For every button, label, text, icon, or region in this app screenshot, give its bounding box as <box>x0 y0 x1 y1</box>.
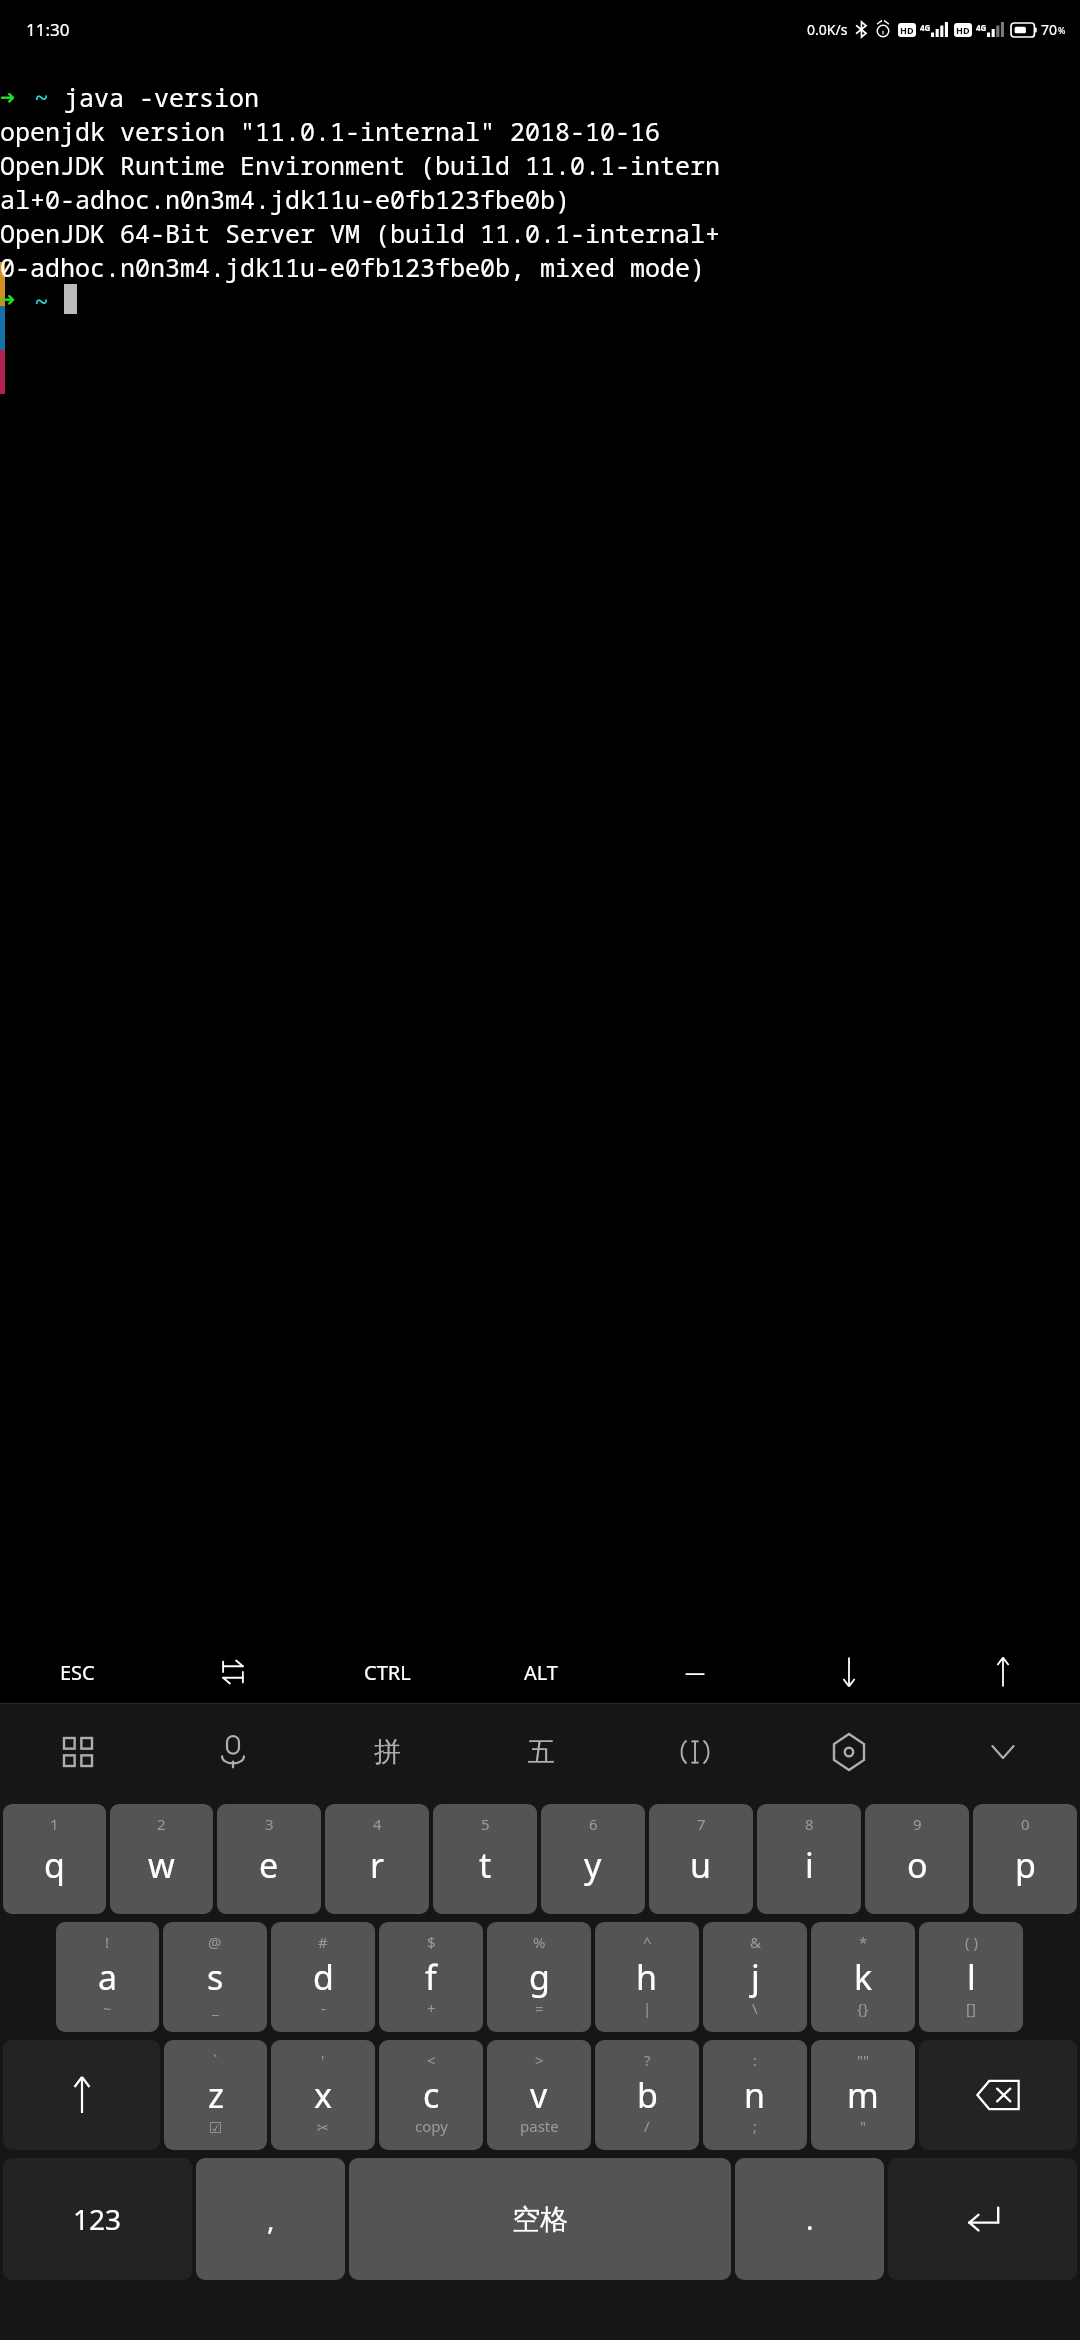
staticText: e <box>259 1842 279 1888</box>
staticText: w <box>148 1842 175 1888</box>
button[interactable]: 9 <box>865 1804 969 1914</box>
button[interactable]: Voice input <box>155 1704 310 1800</box>
button[interactable]: Apps <box>0 1704 155 1800</box>
staticText: 9 <box>913 1814 922 1834</box>
button[interactable]: 8 <box>757 1804 861 1914</box>
staticText: j <box>751 1954 760 2000</box>
staticText: ' <box>321 2050 325 2070</box>
button[interactable]: Shift <box>3 2040 160 2150</box>
button[interactable]: . <box>735 2158 884 2280</box>
staticText: ESC <box>60 1659 95 1686</box>
button[interactable]: @ <box>163 1922 267 2032</box>
button[interactable]: — <box>618 1641 772 1703</box>
staticText: > <box>535 2050 544 2070</box>
staticText: 8 <box>805 1814 814 1834</box>
staticText: ✂ <box>317 2119 330 2136</box>
staticText: o <box>907 1842 928 1888</box>
staticText: : <box>753 2050 758 2070</box>
button[interactable]: 7 <box>649 1804 753 1914</box>
staticText: CTRL <box>364 1659 411 1686</box>
button[interactable]: : <box>703 2040 807 2150</box>
button[interactable]: ' <box>271 2040 375 2150</box>
staticText: ☑ <box>209 2119 223 2136</box>
staticText: ( ) <box>965 1932 978 1952</box>
button[interactable]: > <box>487 2040 591 2150</box>
staticText: & <box>750 1932 761 1952</box>
staticText: 3 <box>265 1814 274 1834</box>
staticText: v <box>530 2072 548 2118</box>
staticText: g <box>529 1954 550 2000</box>
button[interactable]: 2 <box>110 1804 213 1914</box>
staticText: 0.0K/s <box>807 20 848 39</box>
button[interactable]: ESC <box>0 1641 155 1703</box>
button[interactable]: Settings <box>772 1704 926 1800</box>
staticText: ^ <box>643 1932 652 1952</box>
staticText: ALT <box>524 1659 558 1686</box>
button[interactable]: Cursor <box>618 1704 772 1800</box>
button[interactable]: 空格 <box>349 2158 731 2280</box>
staticText: OpenJDK 64-Bit Server VM (build 11.0.1-i… <box>0 216 721 250</box>
staticText: - <box>321 1998 326 2018</box>
staticText: y <box>584 1842 602 1888</box>
staticText: ~ <box>103 1998 112 2018</box>
button[interactable]: ? <box>595 2040 699 2150</box>
button[interactable]: ^ <box>595 1922 699 2032</box>
button[interactable]: # <box>271 1922 375 2032</box>
staticText: "" <box>857 2050 870 2070</box>
staticText: java -version <box>64 80 260 114</box>
staticText: = <box>535 1998 544 2018</box>
staticText: ➜ <box>0 285 16 314</box>
button[interactable]: & <box>703 1922 807 2032</box>
staticText: i <box>805 1842 814 1888</box>
button[interactable]: * <box>811 1922 915 2032</box>
button[interactable]: ( ) <box>919 1922 1023 2032</box>
button[interactable]: Enter <box>888 2158 1077 2280</box>
button[interactable]: 3 <box>217 1804 321 1914</box>
staticText: copy <box>415 2116 448 2136</box>
button[interactable]: key <box>772 1641 926 1703</box>
button[interactable]: ! <box>56 1922 159 2032</box>
staticText: a <box>98 1954 118 2000</box>
button[interactable]: $ <box>379 1922 483 2032</box>
button[interactable]: 五 <box>464 1704 618 1800</box>
staticText: 7 <box>697 1814 706 1834</box>
staticText: 5 <box>481 1814 490 1834</box>
button[interactable]: CTRL <box>310 1641 464 1703</box>
button[interactable]: ALT <box>464 1641 618 1703</box>
staticText: ! <box>105 1932 110 1952</box>
button[interactable]: 4 <box>325 1804 429 1914</box>
button[interactable]: , <box>196 2158 345 2280</box>
staticText: al+0-adhoc.n0n3m4.jdk11u-e0fb123fbe0b) <box>0 182 571 216</box>
staticText: x <box>314 2072 332 2118</box>
button[interactable]: 拼 <box>310 1704 464 1800</box>
staticText: 4 <box>373 1814 382 1834</box>
button[interactable]: < <box>379 2040 483 2150</box>
staticText: 6 <box>589 1814 598 1834</box>
staticText: 4G <box>976 22 987 33</box>
staticText: 11:30 <box>26 18 70 41</box>
staticText: % <box>1058 24 1066 36</box>
button[interactable]: 6 <box>541 1804 645 1914</box>
staticText: 五 <box>528 1735 555 1769</box>
staticText: m <box>847 2072 879 2118</box>
button[interactable]: 5 <box>433 1804 537 1914</box>
button[interactable]: % <box>487 1922 591 2032</box>
staticText: HD <box>900 24 914 36</box>
button[interactable]: 123 <box>3 2158 192 2280</box>
staticText: [] <box>966 1998 976 2018</box>
staticText: HD <box>956 24 970 36</box>
button[interactable]: 1 <box>3 1804 106 1914</box>
button[interactable]: ` <box>164 2040 267 2150</box>
button[interactable]: 0 <box>973 1804 1077 1914</box>
button[interactable]: key <box>926 1641 1080 1703</box>
staticText: 0 <box>1021 1814 1030 1834</box>
button[interactable]: Backspace <box>919 2040 1077 2150</box>
button[interactable]: Hide keyboard <box>926 1704 1080 1800</box>
staticText: " <box>860 2116 867 2136</box>
staticText: openjdk version "11.0.1-internal" 2018-1… <box>0 114 661 148</box>
staticText: _ <box>212 1998 219 2018</box>
staticText: $ <box>427 1932 436 1952</box>
button[interactable]: "" <box>811 2040 915 2150</box>
button[interactable]: key <box>155 1641 310 1703</box>
staticText: 拼 <box>374 1735 401 1769</box>
